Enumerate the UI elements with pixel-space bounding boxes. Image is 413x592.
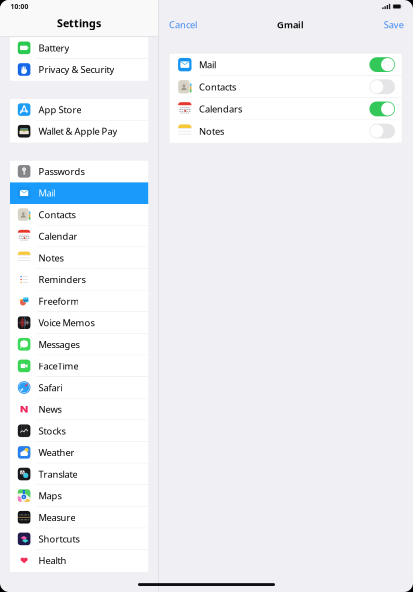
button[interactable]: Measure — [10, 507, 148, 528]
staticText: Calendar — [38, 230, 77, 242]
staticText: Passwords — [38, 165, 84, 177]
button[interactable]: Weather — [10, 442, 148, 463]
button[interactable]: Shortcuts — [10, 528, 148, 550]
button[interactable]: Calendars — [170, 98, 401, 120]
staticText: FaceTime — [38, 360, 78, 372]
button[interactable]: Voice Memos — [10, 312, 148, 334]
staticText: Wallet & Apple Pay — [38, 125, 117, 137]
button[interactable]: App Store — [10, 99, 148, 121]
button[interactable]: Notes — [170, 120, 401, 142]
staticText: Notes — [199, 125, 224, 137]
button[interactable]: Health — [10, 550, 148, 571]
button[interactable]: Safari — [10, 377, 148, 399]
button[interactable]: Maps — [10, 485, 148, 507]
button[interactable]: Contacts — [10, 204, 148, 226]
button[interactable]: Cancel — [169, 18, 197, 31]
staticText: Gmail — [277, 18, 304, 31]
staticText: Weather — [38, 446, 74, 459]
staticText: Health — [38, 554, 66, 567]
staticText: Contacts — [38, 208, 75, 221]
staticText: Notes — [38, 252, 63, 264]
staticText: Translate — [38, 468, 77, 480]
button[interactable]: Notes — [10, 247, 148, 269]
button[interactable]: Save — [384, 18, 404, 31]
button[interactable]: Wallet & Apple Pay — [10, 121, 148, 142]
staticText: 10:00 — [10, 2, 28, 11]
button[interactable]: Battery — [10, 37, 148, 59]
staticText: Safari — [38, 381, 62, 394]
button[interactable]: Calendar — [10, 226, 148, 247]
button[interactable]: Freeform — [10, 290, 148, 312]
button[interactable]: Mail — [10, 182, 148, 204]
staticText: App Store — [38, 103, 81, 116]
staticText: Calendars — [199, 103, 242, 115]
staticText: Messages — [38, 338, 79, 350]
staticText: Stocks — [38, 425, 65, 437]
button[interactable]: Reminders — [10, 269, 148, 290]
staticText: Battery — [38, 42, 69, 54]
button[interactable]: Privacy & Security — [10, 59, 148, 80]
staticText: Settings — [57, 16, 101, 30]
staticText: Shortcuts — [38, 533, 79, 545]
staticText: Privacy & Security — [38, 63, 114, 76]
staticText: Contacts — [199, 81, 236, 93]
staticText: Voice Memos — [38, 316, 94, 329]
button[interactable]: Contacts — [170, 76, 401, 98]
staticText: Reminders — [38, 273, 85, 286]
staticText: News — [38, 403, 61, 415]
staticText: Freeform — [38, 295, 79, 307]
staticText: Mail — [38, 187, 55, 199]
button[interactable]: Passwords — [10, 161, 148, 182]
button[interactable]: Stocks — [10, 420, 148, 442]
staticText: A — [21, 469, 24, 476]
staticText: Mail — [199, 58, 216, 71]
button[interactable]: Mail — [170, 54, 401, 76]
button[interactable]: News — [10, 399, 148, 420]
button[interactable]: A — [10, 463, 148, 485]
staticText: Maps — [38, 489, 61, 502]
staticText: Measure — [38, 511, 75, 523]
button[interactable]: Messages — [10, 334, 148, 355]
button[interactable]: FaceTime — [10, 355, 148, 377]
staticText: Save — [384, 18, 404, 31]
staticText: Cancel — [169, 18, 197, 31]
